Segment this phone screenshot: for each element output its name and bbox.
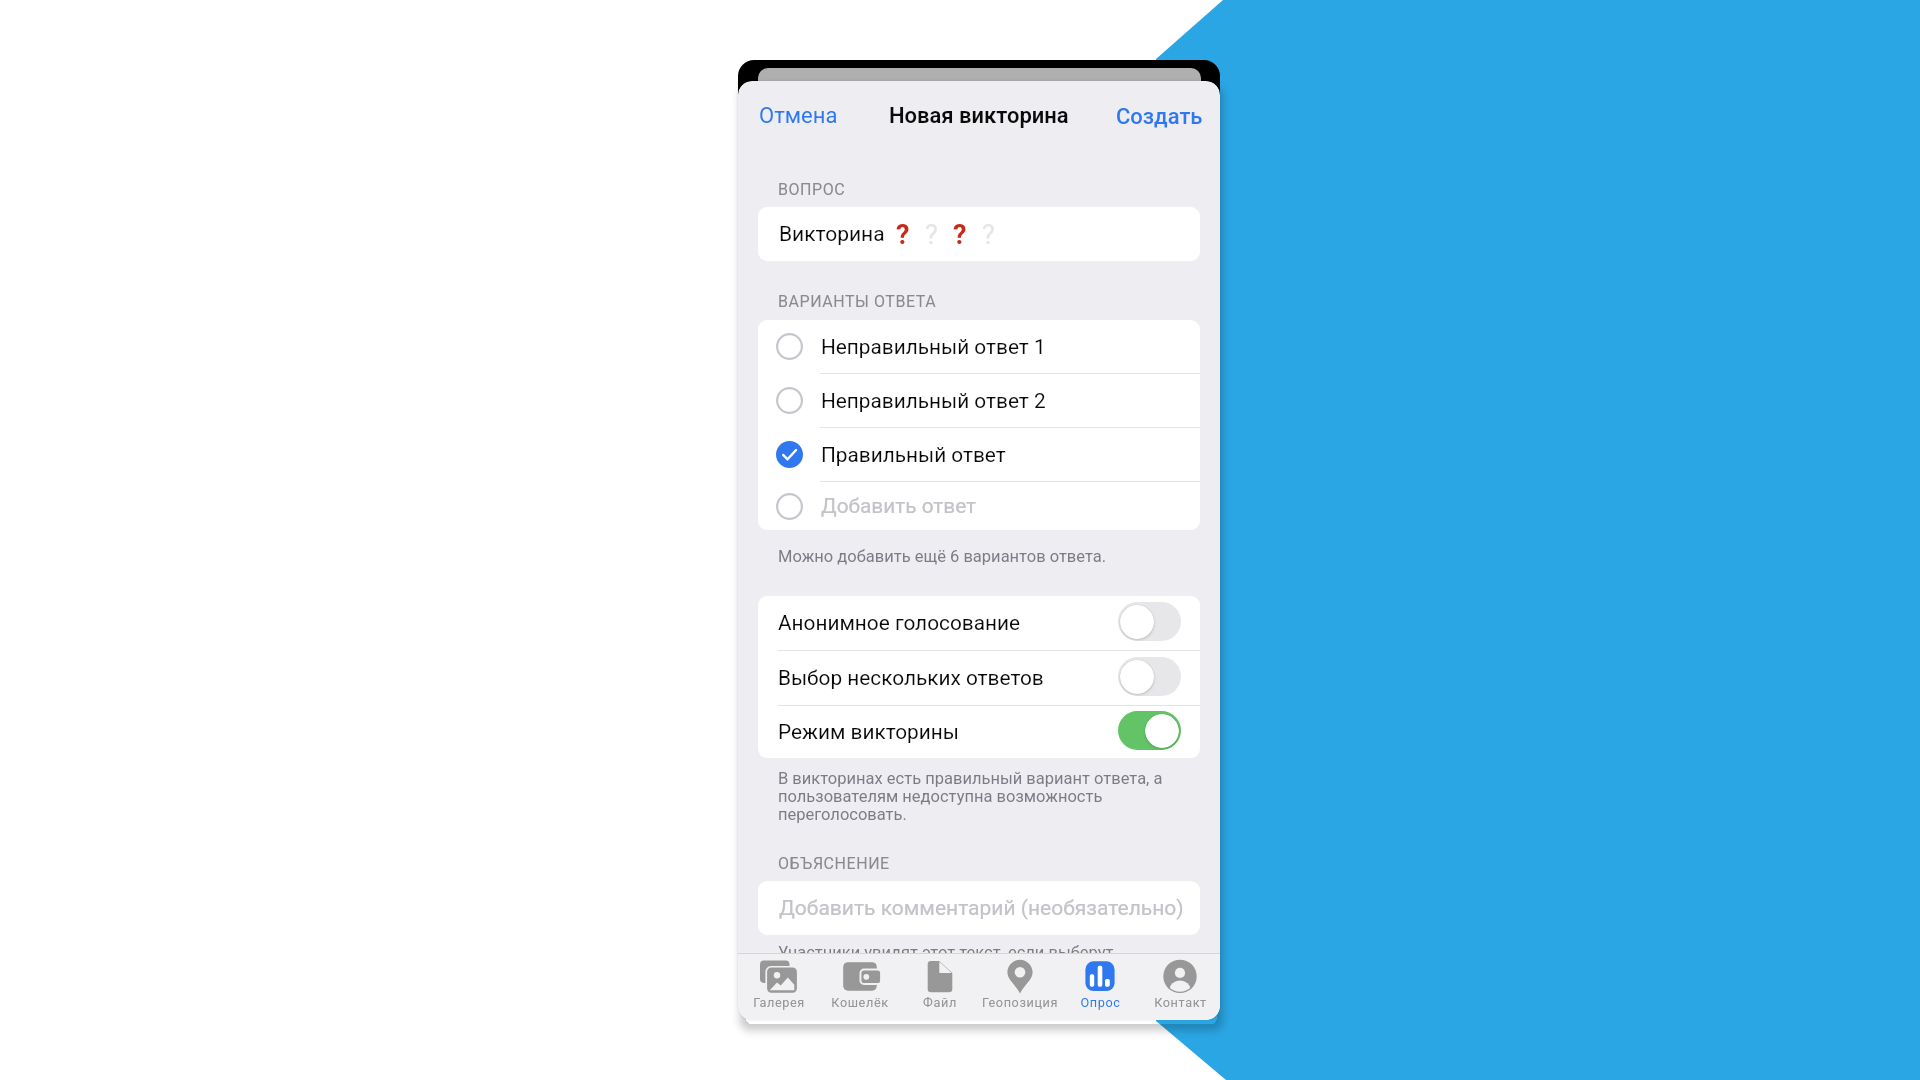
staticText: Анонимное голосование bbox=[778, 611, 1020, 635]
button[interactable]: Добавить ответ bbox=[758, 482, 1200, 530]
staticText: Добавить комментарий (необязательно) bbox=[779, 896, 1184, 921]
other: Файл bbox=[920, 959, 960, 994]
button[interactable]: Режим викторины bbox=[758, 706, 1200, 758]
button[interactable]: Опрос bbox=[1060, 953, 1140, 1020]
button[interactable]: Кошелёк bbox=[819, 953, 900, 1020]
staticText: ? bbox=[925, 219, 938, 251]
staticText: ВАРИАНТЫ ОТВЕТА bbox=[778, 292, 937, 311]
button[interactable]: Создать bbox=[1109, 99, 1210, 135]
button[interactable]: Анонимное голосование bbox=[758, 596, 1200, 650]
staticText: Участники увидят этот текст, если выберу… bbox=[778, 943, 1178, 962]
staticText: ? bbox=[896, 219, 910, 251]
staticText: Правильный ответ bbox=[821, 443, 1006, 467]
button[interactable]: Контакт bbox=[1140, 953, 1220, 1020]
button[interactable]: Неправильный ответ 1 bbox=[758, 320, 1200, 373]
button[interactable]: Выбор нескольких ответов bbox=[758, 651, 1200, 705]
button[interactable]: Правильный ответ bbox=[758, 428, 1200, 481]
staticText: Неправильный ответ 1 bbox=[821, 335, 1046, 359]
button[interactable]: Файл bbox=[900, 953, 980, 1020]
staticText: Новая викторина bbox=[889, 103, 1069, 129]
staticText: Отмена bbox=[759, 103, 838, 129]
staticText: Викторина bbox=[779, 222, 885, 247]
staticText: ВОПРОС bbox=[778, 180, 846, 199]
staticText: В викторинах есть правильный вариант отв… bbox=[778, 769, 1170, 825]
button[interactable]: Галерея bbox=[738, 953, 819, 1020]
button[interactable]: Отмена bbox=[752, 98, 845, 134]
other: Галерея bbox=[759, 959, 799, 994]
staticText: Галерея bbox=[753, 995, 805, 1010]
other: Геопозиция bbox=[1000, 959, 1040, 994]
staticText: Добавить ответ bbox=[821, 494, 977, 518]
other: Контакт bbox=[1160, 959, 1200, 994]
button[interactable]: Добавить комментарий (необязательно) bbox=[758, 881, 1200, 935]
button[interactable]: Викторина bbox=[758, 207, 1200, 261]
staticText: Контакт bbox=[1154, 995, 1207, 1010]
other: Опрос bbox=[1080, 959, 1120, 994]
staticText: Можно добавить ещё 6 вариантов ответа. bbox=[778, 547, 1178, 566]
other: Кошелёк bbox=[840, 959, 880, 994]
button[interactable]: Неправильный ответ 2 bbox=[758, 374, 1200, 427]
staticText: Опрос bbox=[1080, 995, 1121, 1010]
button[interactable]: Геопозиция bbox=[980, 953, 1060, 1020]
staticText: ОБЪЯСНЕНИЕ bbox=[778, 854, 890, 873]
staticText: Геопозиция bbox=[982, 995, 1058, 1010]
staticText: Кошелёк bbox=[831, 995, 889, 1010]
staticText: Неправильный ответ 2 bbox=[821, 389, 1046, 413]
staticText: Режим викторины bbox=[778, 720, 959, 744]
staticText: ? bbox=[953, 219, 967, 251]
staticText: Выбор нескольких ответов bbox=[778, 666, 1044, 690]
staticText: Файл bbox=[923, 995, 957, 1010]
staticText: ? bbox=[982, 219, 995, 251]
staticText: Создать bbox=[1116, 104, 1203, 130]
